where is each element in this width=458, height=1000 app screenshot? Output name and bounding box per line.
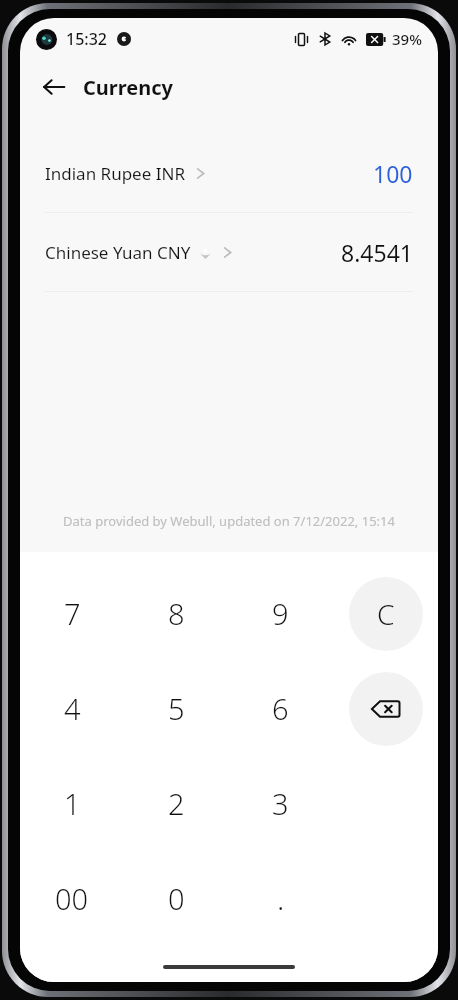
staticText: 9: [272, 594, 289, 633]
button[interactable]: Backspace: [349, 672, 423, 746]
button[interactable]: 5: [124, 661, 228, 756]
staticText: Currency: [83, 74, 173, 101]
button[interactable]: .: [228, 851, 333, 946]
button[interactable]: Indian Rupee INR: [20, 134, 438, 212]
staticText: 2: [168, 784, 185, 823]
staticText: 7: [64, 594, 81, 633]
staticText: Indian Rupee INR: [45, 162, 185, 185]
staticText: 1: [64, 784, 81, 823]
button[interactable]: 6: [228, 661, 333, 756]
button[interactable]: 1: [20, 756, 124, 851]
staticText: 0: [168, 879, 185, 918]
staticText: Data provided by Webull, updated on 7/12…: [20, 512, 438, 530]
staticText: 4: [64, 689, 81, 728]
staticText: 6: [272, 689, 289, 728]
button[interactable]: 4: [20, 661, 124, 756]
button[interactable]: 2: [124, 756, 228, 851]
staticText: 100: [373, 158, 413, 189]
button[interactable]: Chinese Yuan CNY: [20, 213, 438, 291]
staticText: 39%: [392, 29, 422, 49]
staticText: 8: [168, 594, 185, 633]
button[interactable]: Back: [34, 67, 74, 107]
button[interactable]: 0: [124, 851, 228, 946]
button[interactable]: C: [349, 577, 423, 651]
button[interactable]: 3: [228, 756, 333, 851]
button[interactable]: 00: [20, 851, 124, 946]
staticText: 3: [272, 784, 289, 823]
staticText: 5: [168, 689, 185, 728]
staticText: 8.4541: [341, 237, 413, 268]
staticText: 00: [55, 879, 89, 918]
button[interactable]: 8: [124, 566, 228, 661]
staticText: Chinese Yuan CNY: [45, 241, 191, 264]
staticText: 15:32: [66, 28, 107, 50]
staticText: .: [277, 878, 285, 919]
staticText: C: [377, 595, 395, 633]
button[interactable]: 7: [20, 566, 124, 661]
button[interactable]: 9: [228, 566, 333, 661]
